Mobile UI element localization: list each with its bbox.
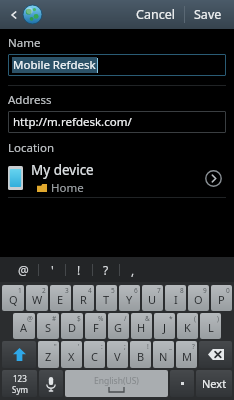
- staticText: P: [218, 292, 225, 307]
- button[interactable]: 5: [96, 285, 117, 311]
- staticText: &: [145, 314, 150, 323]
- button[interactable]: *: [154, 313, 175, 339]
- button[interactable]: My device: [8, 159, 226, 197]
- button[interactable]: 8: [165, 285, 186, 311]
- staticText: O: [194, 292, 203, 307]
- staticText: ): [217, 314, 219, 323]
- button[interactable]: ): [200, 313, 221, 339]
- button[interactable]: Choose location: [200, 165, 226, 191]
- button[interactable]: &: [131, 313, 152, 339]
- staticText: ': [51, 262, 54, 278]
- button[interactable]: ,: [120, 257, 146, 282]
- staticText: 3: [65, 286, 69, 295]
- button[interactable]: Back: [5, 0, 22, 29]
- staticText: Address: [8, 92, 52, 108]
- staticText: Cancel: [136, 6, 175, 23]
- button[interactable]: Mobile Refdesk: [8, 54, 226, 76]
- button[interactable]: 3: [50, 285, 71, 311]
- staticText: B: [137, 349, 145, 364]
- button[interactable]: $: [61, 313, 83, 339]
- button[interactable]: 7: [142, 285, 163, 311]
- button[interactable]: /: [108, 313, 129, 339]
- staticText: @: [27, 314, 33, 323]
- staticText: ;: [124, 342, 126, 351]
- staticText: Y: [126, 292, 133, 307]
- staticText: K: [184, 320, 191, 335]
- button[interactable]: 1: [2, 285, 24, 311]
- button[interactable]: ?: [93, 257, 119, 282]
- staticText: U: [148, 292, 157, 307]
- button[interactable]: @: [13, 313, 35, 339]
- button[interactable]: #: [37, 313, 59, 339]
- button[interactable]: Next: [196, 370, 232, 397]
- button[interactable]: Browser: [22, 4, 43, 25]
- staticText: Sym: [12, 384, 28, 395]
- button[interactable]: 9: [188, 285, 209, 311]
- staticText: @: [18, 262, 29, 278]
- button[interactable]: Voice input: [39, 370, 63, 397]
- staticText: #: [52, 314, 57, 323]
- button[interactable]: @: [8, 257, 38, 282]
- staticText: X: [68, 349, 75, 364]
- staticText: V: [114, 349, 121, 364]
- staticText: 0: [226, 286, 230, 295]
- button[interactable]: %: [85, 313, 106, 339]
- button[interactable]: 0: [211, 285, 232, 311]
- button[interactable]: Save: [185, 0, 231, 29]
- button[interactable]: Backspace: [199, 341, 232, 368]
- button[interactable]: English(US): [65, 370, 168, 397]
- button[interactable]: ": [38, 341, 59, 368]
- button[interactable]: ;: [107, 341, 128, 368]
- button[interactable]: Symbols: [2, 370, 37, 397]
- staticText: English(US): [94, 375, 139, 387]
- button[interactable]: 4: [73, 285, 94, 311]
- staticText: C: [91, 349, 98, 364]
- staticText: ?: [192, 342, 195, 351]
- staticText: Z: [45, 349, 52, 364]
- button[interactable]: ?: [176, 341, 197, 368]
- staticText: ": [54, 342, 57, 351]
- staticText: :: [101, 342, 103, 351]
- button[interactable]: 6: [119, 285, 140, 311]
- staticText: 2: [42, 286, 46, 295]
- button[interactable]: ': [61, 341, 82, 368]
- button[interactable]: (: [177, 313, 198, 339]
- staticText: _: [169, 342, 172, 351]
- button[interactable]: _: [153, 341, 174, 368]
- staticText: My device: [31, 161, 94, 179]
- staticText: R: [80, 292, 87, 307]
- staticText: 1: [18, 286, 22, 295]
- staticText: H: [137, 320, 146, 335]
- staticText: Q: [9, 292, 18, 307]
- staticText: Location: [8, 140, 55, 156]
- staticText: S: [45, 320, 52, 335]
- staticText: 6: [134, 286, 138, 295]
- button[interactable]: Period: [170, 370, 194, 397]
- button[interactable]: Shift: [2, 341, 36, 368]
- button[interactable]: !: [130, 341, 151, 368]
- staticText: 7: [157, 286, 161, 295]
- button[interactable]: ': [39, 257, 65, 282]
- staticText: ': [78, 342, 80, 351]
- staticText: http://m.refdesk.com/: [13, 114, 132, 130]
- staticText: Mobile Refdesk: [13, 57, 96, 73]
- staticText: !: [77, 262, 81, 278]
- staticText: T: [103, 292, 110, 307]
- staticText: L: [208, 320, 214, 335]
- staticText: Next: [202, 376, 227, 391]
- button[interactable]: 2: [26, 285, 48, 311]
- staticText: J: [163, 320, 167, 335]
- button[interactable]: !: [66, 257, 92, 282]
- staticText: Name: [8, 35, 41, 51]
- staticText: Save: [194, 6, 222, 23]
- button[interactable]: :: [84, 341, 105, 368]
- staticText: ?: [103, 262, 109, 278]
- staticText: (: [194, 314, 196, 323]
- button[interactable]: Cancel: [127, 0, 184, 29]
- staticText: A: [20, 320, 28, 335]
- button[interactable]: http://m.refdesk.com/: [8, 111, 226, 133]
- staticText: Home: [51, 180, 84, 196]
- staticText: I: [174, 292, 178, 307]
- staticText: N: [159, 349, 168, 364]
- staticText: 9: [203, 286, 207, 295]
